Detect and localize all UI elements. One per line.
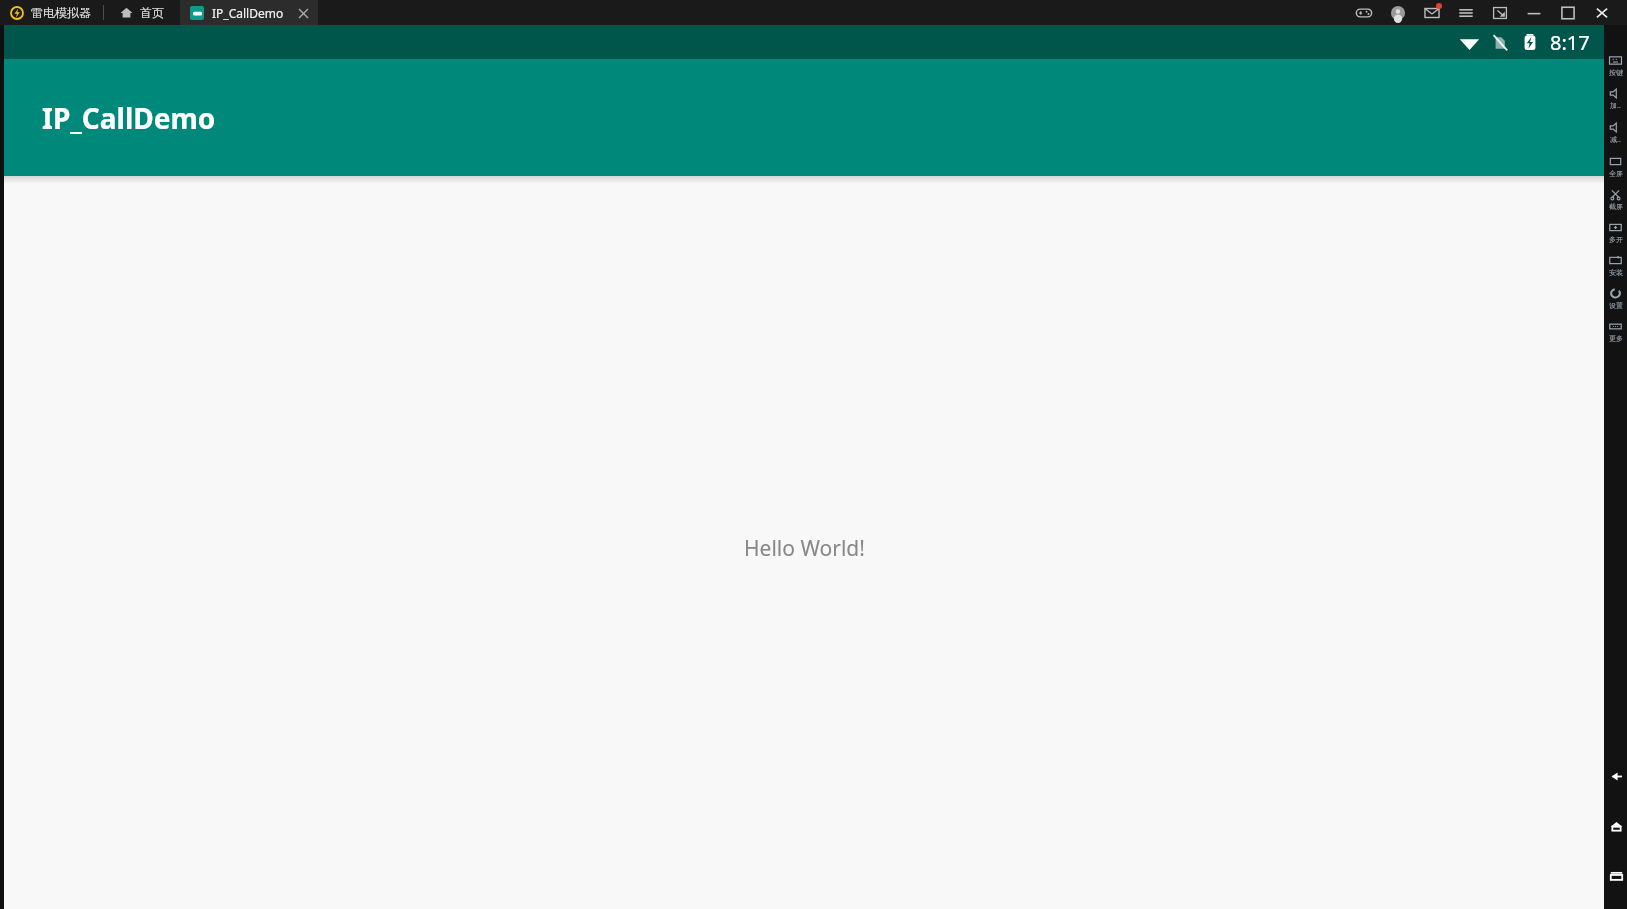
- button[interactable]: Multi instance: [1604, 216, 1627, 249]
- button[interactable]: IP_CallDemo: [180, 0, 318, 25]
- button[interactable]: 首页: [104, 0, 180, 25]
- staticText: 更多: [1609, 334, 1623, 343]
- button[interactable]: Settings: [1604, 282, 1627, 315]
- staticText: 多开: [1609, 235, 1623, 244]
- button[interactable]: Back: [1605, 765, 1627, 787]
- staticText: Hello World!: [744, 534, 865, 563]
- button[interactable]: Menu: [1449, 0, 1483, 25]
- staticText: 首页: [140, 5, 164, 20]
- staticText: 减..: [1610, 135, 1621, 145]
- button[interactable]: 雷电模拟器: [0, 0, 103, 25]
- button[interactable]: Minimize: [1517, 0, 1551, 25]
- staticText: 设置: [1609, 301, 1623, 310]
- button[interactable]: Game center: [1347, 0, 1381, 25]
- button[interactable]: Screenshot: [1604, 183, 1627, 216]
- button[interactable]: Keyboard mapping: [1604, 49, 1627, 82]
- button[interactable]: Home: [1605, 815, 1627, 837]
- button[interactable]: Volume down: [1604, 116, 1627, 150]
- button[interactable]: Messages: [1415, 0, 1449, 25]
- staticText: 安装: [1609, 268, 1623, 277]
- button[interactable]: More options: [1604, 315, 1627, 348]
- staticText: IP_CallDemo: [42, 99, 216, 137]
- button[interactable]: Restore: [1483, 0, 1517, 25]
- button[interactable]: Close tab: [294, 4, 312, 22]
- staticText: 加..: [1610, 101, 1621, 111]
- staticText: 8:17: [1550, 29, 1590, 56]
- staticText: IP_CallDemo: [212, 5, 284, 21]
- button[interactable]: Recent apps: [1605, 865, 1627, 887]
- button[interactable]: Volume up: [1604, 82, 1627, 116]
- button[interactable]: Close: [1585, 0, 1619, 25]
- button[interactable]: Install APK: [1604, 249, 1627, 282]
- staticText: 按键: [1609, 68, 1623, 77]
- button[interactable]: Account: [1381, 0, 1415, 25]
- staticText: 雷电模拟器: [31, 5, 91, 20]
- button[interactable]: Full screen: [1604, 150, 1627, 183]
- staticText: 截屏: [1609, 202, 1623, 211]
- button[interactable]: Maximize: [1551, 0, 1585, 25]
- staticText: 全屏: [1609, 169, 1623, 178]
